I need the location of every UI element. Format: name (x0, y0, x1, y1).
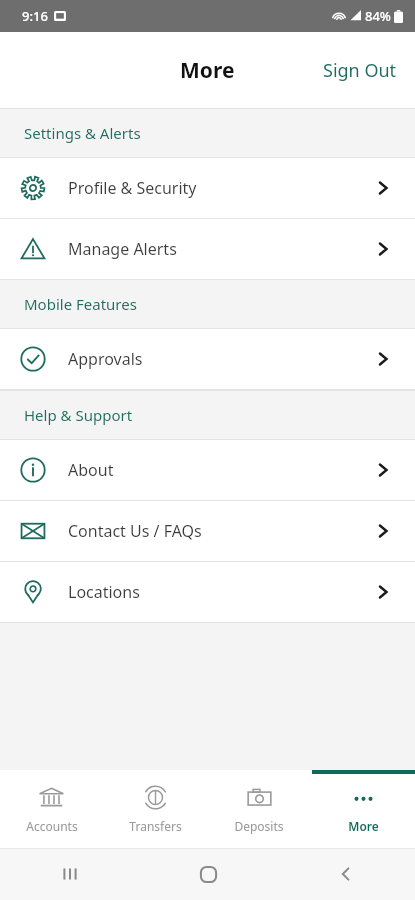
other: Home (199, 865, 218, 884)
staticText: Accounts (26, 818, 78, 834)
staticText: More (348, 818, 379, 834)
staticText: About (68, 459, 372, 481)
staticText: Mobile Features (24, 294, 137, 314)
staticText: Settings & Alerts (24, 123, 141, 143)
staticText: Sign Out (323, 58, 397, 83)
other: Recent apps (60, 864, 80, 884)
button[interactable]: Approvals (0, 329, 415, 389)
staticText: Transfers (129, 818, 182, 834)
button[interactable]: Contact Us / FAQs (0, 501, 415, 561)
button[interactable]: More (311, 770, 415, 848)
staticText: Approvals (68, 348, 372, 370)
staticText: Profile & Security (68, 177, 372, 199)
button[interactable]: More (180, 56, 235, 85)
button[interactable]: Manage Alerts (0, 219, 415, 279)
staticText: Deposits (234, 818, 284, 834)
button[interactable]: Sign Out (305, 48, 415, 93)
button[interactable]: Locations (0, 562, 415, 622)
staticText: Locations (68, 581, 372, 603)
staticText: Manage Alerts (68, 238, 372, 260)
staticText: 84% (365, 7, 391, 25)
button[interactable]: Accounts (0, 770, 103, 848)
button[interactable]: About (0, 440, 415, 500)
other: Back (336, 864, 356, 884)
button[interactable]: Deposits (207, 770, 311, 848)
staticText: 9:16 (22, 7, 48, 25)
staticText: Help & Support (24, 405, 133, 425)
button[interactable]: Profile & Security (0, 158, 415, 218)
button[interactable]: Transfers (103, 770, 207, 848)
staticText: More (180, 56, 235, 85)
staticText: Contact Us / FAQs (68, 520, 372, 542)
